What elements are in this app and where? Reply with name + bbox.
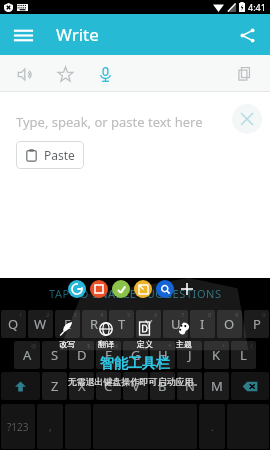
button[interactable]: 主题 [175,320,192,349]
button[interactable]: 5 [109,310,134,338]
staticText: 6 [154,311,158,319]
button[interactable]: X [69,372,94,400]
button[interactable]: $ [69,341,94,369]
button[interactable]: Backspace [231,372,269,400]
staticText: , [49,420,52,434]
button[interactable]: + [204,341,229,369]
button[interactable]: Add app [178,280,196,298]
staticText: 翻译 [98,339,114,349]
staticText: D [77,346,87,364]
button[interactable]: 定义 [136,320,153,349]
staticText: U [171,315,181,333]
button[interactable]: # [42,341,67,369]
staticText: % [113,342,118,350]
staticText: ( [251,342,253,350]
button[interactable]: M [204,372,229,400]
staticText: 1 [19,311,23,319]
button[interactable]: Menu [8,20,38,50]
button[interactable]: 8 [190,310,215,338]
button[interactable]: B [150,372,175,400]
staticText: 4 [100,311,104,319]
staticText: H [158,346,168,364]
staticText: 8 [208,311,212,319]
button[interactable]: 翻译 [97,320,114,349]
button[interactable]: 2 [28,310,53,338]
staticText: X [78,377,86,395]
staticText: Paste [44,147,75,163]
button[interactable]: 3 [55,310,80,338]
staticText: . [211,420,214,434]
staticText: E [64,315,72,333]
staticText: I [200,315,205,333]
staticText: @ [31,342,37,350]
button[interactable]: Copy [230,59,260,89]
button[interactable]: C [96,372,121,400]
button[interactable]: 0 [244,310,269,338]
button[interactable]: App [112,280,130,298]
staticText: 智能工具栏 [0,355,270,373]
button[interactable]: 9 [217,310,242,338]
staticText: N [185,377,195,395]
staticText: R [90,315,99,333]
staticText: 改写 [59,339,75,349]
button[interactable]: 7 [163,310,188,338]
button[interactable]: 6 [136,310,161,338]
button[interactable]: & [123,341,148,369]
staticText: 0 [262,311,266,319]
button[interactable]: 1 [1,310,26,338]
button[interactable]: Z [42,372,67,400]
staticText: $ [87,342,91,350]
staticText: J [188,346,192,364]
staticText: G [131,346,141,364]
button[interactable]: N [177,372,202,400]
staticText: W [34,315,47,333]
button[interactable]: % [96,341,121,369]
staticText: 4:41 [248,1,266,13]
staticText: Type, speak, or paste text here [16,113,203,131]
button[interactable]: Paste [16,141,84,169]
staticText: O [224,315,235,333]
staticText: 9 [235,311,239,319]
staticText: # [60,342,64,350]
button[interactable]: Microphone [90,59,120,89]
button[interactable]: App [68,280,86,298]
button[interactable]: Speak aloud [10,59,40,89]
button[interactable]: * [150,341,175,369]
button[interactable]: @ [14,341,40,369]
staticText: A [23,346,32,364]
button[interactable]: App [156,280,174,298]
button[interactable]: App [90,280,108,298]
staticText: V [132,377,140,395]
button[interactable]: App [134,280,152,298]
button[interactable]: Clear [232,104,262,134]
staticText: B [158,377,167,395]
staticText: Z [51,377,59,395]
staticText: 2 [46,311,50,319]
button[interactable]: Shift [1,372,40,400]
button[interactable]: - [177,341,202,369]
staticText: L [240,346,247,364]
button[interactable]: 改写 [58,320,75,349]
staticText: Write [56,23,99,46]
button[interactable]: Share [232,20,262,50]
staticText: Q [8,315,19,333]
staticText: ?123 [7,420,29,434]
staticText: * [168,342,172,350]
button[interactable]: Symbols [1,404,35,449]
staticText: M [211,377,223,395]
staticText: 定义 [137,339,153,349]
staticText: K [212,346,221,364]
button[interactable]: V [123,372,148,400]
staticText: + [222,342,226,350]
button[interactable]: 4 [82,310,107,338]
button[interactable]: Favorite [50,59,80,89]
staticText: P [253,315,261,333]
button[interactable]: ( [231,341,256,369]
staticText: 无需退出键盘操作即可启动应用。 [0,376,270,387]
staticText: T [118,315,126,333]
